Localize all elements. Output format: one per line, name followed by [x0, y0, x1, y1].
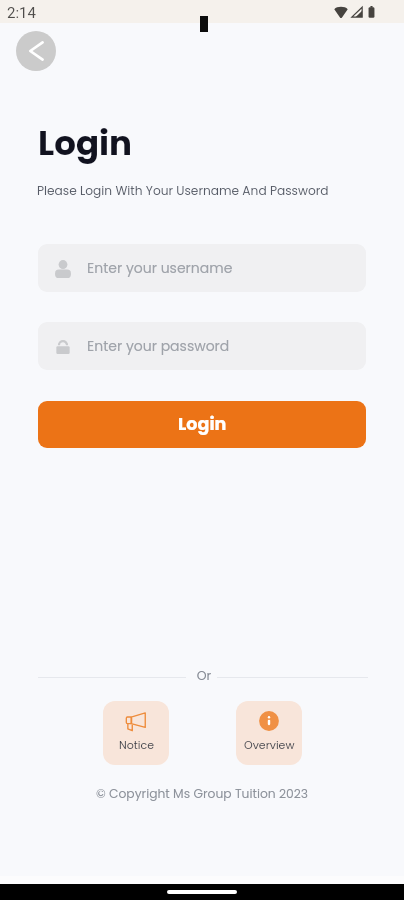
staticText: Please Login With Your Username And Pass…	[37, 182, 329, 199]
staticText: Login	[38, 119, 132, 167]
button[interactable]: Enter your username	[38, 244, 366, 292]
button[interactable]: Notice	[103, 701, 169, 765]
staticText: Or	[2, 667, 404, 684]
button[interactable]: Overview	[236, 701, 302, 765]
staticText: Notice	[119, 737, 154, 752]
staticText: © Copyright Ms Group Tuition 2023	[0, 785, 404, 802]
staticText: Overview	[244, 737, 295, 752]
staticText: Enter your username	[87, 258, 233, 278]
button[interactable]: Back	[16, 31, 56, 71]
button[interactable]: Login	[38, 401, 366, 448]
staticText: Enter your password	[87, 336, 230, 356]
button[interactable]: Enter your password	[38, 322, 366, 370]
staticText: 2:14	[7, 4, 36, 22]
staticText: Login	[178, 412, 227, 437]
